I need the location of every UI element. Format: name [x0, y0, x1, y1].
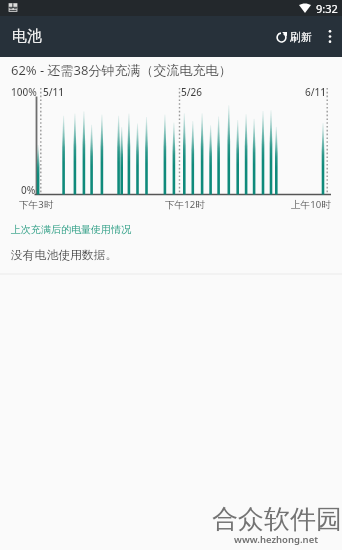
staticText: 5/26: [181, 85, 203, 99]
button[interactable]: More options: [318, 16, 342, 57]
staticText: 5/11: [43, 85, 65, 99]
staticText: 上午10时: [291, 198, 331, 211]
staticText: 没有电池使用数据。: [11, 248, 118, 263]
staticText: 6/11: [305, 85, 327, 99]
staticText: 合众软件园: [212, 503, 342, 536]
staticText: 刷新: [290, 30, 312, 44]
staticText: 62% - 还需38分钟充满（交流电充电）: [11, 61, 232, 79]
staticText: www.hezhong.net: [234, 533, 319, 546]
staticText: 9:32: [316, 1, 338, 16]
button[interactable]: 上次充满后的电量使用情况: [11, 223, 131, 236]
button[interactable]: 刷新: [270, 22, 318, 52]
staticText: 下午3时: [19, 198, 54, 211]
staticText: 100%: [11, 85, 37, 99]
staticText: 0%: [21, 183, 36, 197]
staticText: 下午12时: [165, 198, 205, 211]
staticText: 电池: [12, 27, 42, 46]
